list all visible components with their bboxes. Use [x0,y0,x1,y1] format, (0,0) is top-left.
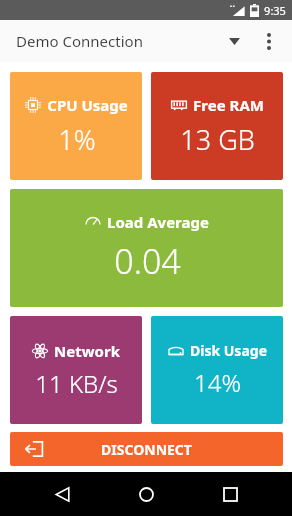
button[interactable]: Network [10,316,142,424]
button[interactable]: Disk Usage [151,316,283,424]
staticText: CPU Usage [47,95,128,115]
button[interactable]: Back [40,472,84,516]
staticText: 1% [58,121,96,158]
staticText: Load Average [107,212,209,232]
button[interactable]: CPU Usage [10,72,142,180]
staticText: Free RAM [193,95,264,115]
staticText: Network [54,341,120,361]
staticText: Demo Connection [16,31,143,51]
staticText: 0.04 [114,238,181,284]
button[interactable]: Load Average [10,189,283,307]
button[interactable]: Home [124,472,168,516]
staticText: 13 GB [180,121,255,158]
staticText: 11 KB/s [35,367,118,400]
staticText: DISCONNECT [101,440,192,459]
button[interactable]: Recent apps [208,472,252,516]
staticText: Disk Usage [190,341,267,360]
button[interactable]: DISCONNECT [10,432,283,466]
button[interactable]: Free RAM [151,72,283,180]
staticText: 14% [194,366,241,399]
staticText: 9:35 [264,3,286,18]
button[interactable]: More options [254,26,284,56]
button[interactable]: Select connection [220,27,248,55]
